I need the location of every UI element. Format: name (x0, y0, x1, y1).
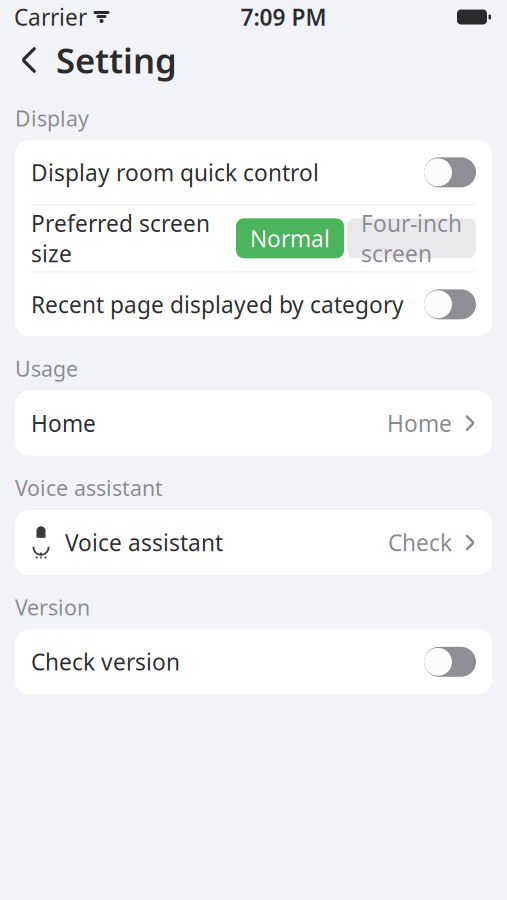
staticText: Setting (56, 37, 177, 83)
staticText: Normal (250, 223, 330, 253)
staticText: Version (15, 593, 90, 621)
button[interactable]: Four-inch screen (347, 218, 476, 258)
staticText: Four-inch screen (361, 208, 462, 268)
staticText: Home (387, 408, 452, 438)
button[interactable]: Back (2, 35, 56, 85)
staticText: Usage (15, 354, 78, 383)
staticText: Voice assistant (65, 527, 223, 557)
staticText: Carrier (14, 2, 87, 32)
button[interactable]: Check version (15, 629, 492, 694)
staticText: Check (388, 527, 452, 557)
staticText: Display room quick control (31, 157, 319, 187)
staticText: Recent page displayed by category (31, 289, 404, 319)
button[interactable]: Home (15, 391, 492, 456)
staticText: Display (15, 104, 89, 132)
staticText: Voice assistant (15, 474, 163, 502)
button[interactable]: Recent page displayed by category (15, 272, 492, 336)
button[interactable]: Normal (236, 218, 344, 258)
staticText: Home (31, 408, 96, 438)
staticText: Check version (31, 647, 180, 677)
staticText: Preferred screen size (31, 208, 210, 268)
button[interactable]: Display room quick control (15, 140, 492, 204)
button[interactable]: Voice assistant (15, 510, 492, 575)
staticText: 7:09 PM (240, 2, 326, 32)
